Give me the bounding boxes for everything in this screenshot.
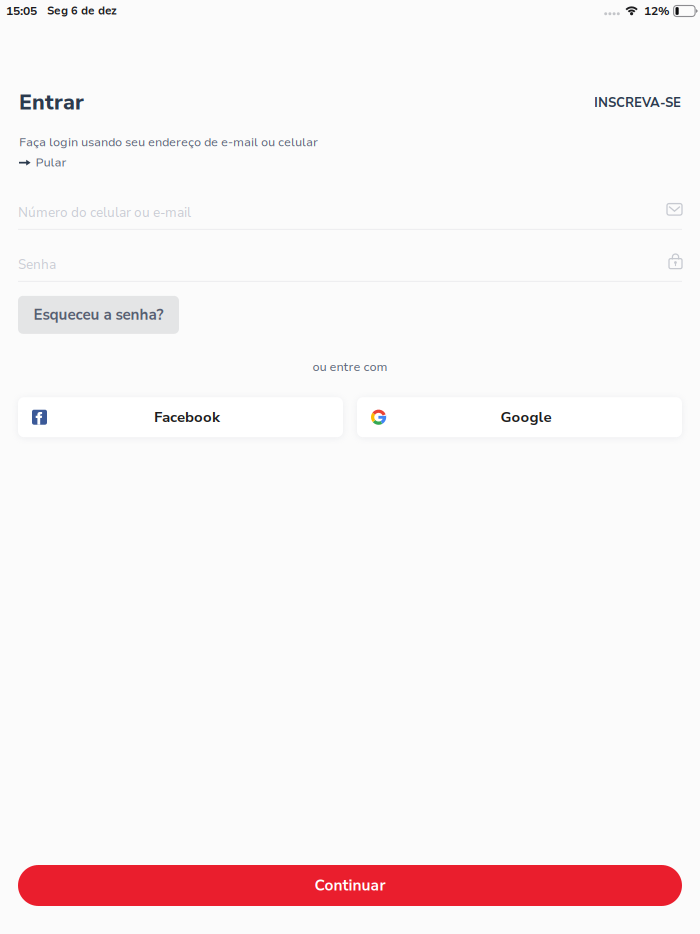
staticText: Pular [36,154,67,171]
staticText: ou entre com [312,359,387,375]
staticText: INSCREVA-SE [594,94,681,111]
staticText: Faça login usando seu endereço de e-mail… [19,134,318,150]
button[interactable]: Pular [19,154,67,171]
button[interactable]: INSCREVA-SE [594,88,681,111]
staticText: Facebook [154,407,220,427]
staticText: Número do celular ou e-mail [18,204,191,222]
button[interactable]: Esqueceu a senha? [18,296,179,334]
staticText: Seg 6 de dez [47,3,117,18]
staticText: Continuar [314,875,385,896]
staticText: Google [501,407,552,427]
staticText: Senha [18,256,56,274]
staticText: Entrar [19,88,84,117]
staticText: 12% [644,3,670,19]
button[interactable]: Google [357,397,682,437]
staticText: 15:05 [6,3,37,19]
button[interactable]: Facebook [18,397,343,437]
button[interactable]: Continuar [18,865,682,906]
staticText: Esqueceu a senha? [33,305,163,325]
